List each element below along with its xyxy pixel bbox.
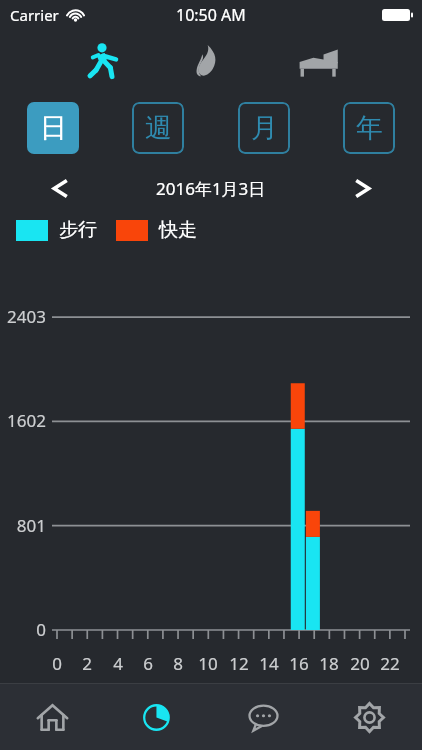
button[interactable]: Steps xyxy=(78,35,130,87)
staticText: 8 xyxy=(173,652,183,675)
staticText: Carrier xyxy=(10,5,59,25)
staticText: 12 xyxy=(229,652,249,675)
staticText: 2403 xyxy=(7,305,46,328)
button[interactable]: Statistics xyxy=(105,684,210,750)
staticText: 18 xyxy=(319,652,339,675)
staticText: 22 xyxy=(380,652,400,675)
button[interactable]: Sleep xyxy=(292,35,344,87)
button[interactable]: 週 xyxy=(132,102,184,154)
staticText: 週 xyxy=(145,111,172,145)
staticText: 14 xyxy=(259,652,279,675)
staticText: 20 xyxy=(350,652,370,675)
staticText: 801 xyxy=(16,514,46,537)
staticText: 4 xyxy=(113,652,123,675)
button[interactable]: Messages xyxy=(210,684,316,750)
button[interactable]: Previous day xyxy=(40,168,80,208)
staticText: 2016年1月3日 xyxy=(156,177,266,200)
button[interactable]: Home xyxy=(0,684,105,750)
staticText: 年 xyxy=(356,111,383,145)
button[interactable]: 日 xyxy=(27,102,79,154)
staticText: 0 xyxy=(36,618,46,641)
button[interactable]: 年 xyxy=(343,102,395,154)
button[interactable]: Calories xyxy=(179,35,231,87)
staticText: 快走 xyxy=(159,218,197,242)
staticText: 6 xyxy=(143,652,153,675)
staticText: 10:50 AM xyxy=(176,4,246,26)
button[interactable]: Settings xyxy=(316,684,422,750)
staticText: 日 xyxy=(40,111,67,145)
staticText: 1602 xyxy=(7,409,46,432)
button[interactable]: 月 xyxy=(238,102,290,154)
staticText: 月 xyxy=(251,111,278,145)
button[interactable]: Next day xyxy=(342,168,382,208)
staticText: 16 xyxy=(289,652,309,675)
staticText: 0 xyxy=(52,652,62,675)
staticText: 10 xyxy=(198,652,218,675)
staticText: 2 xyxy=(82,652,92,675)
staticText: 步行 xyxy=(59,218,97,242)
